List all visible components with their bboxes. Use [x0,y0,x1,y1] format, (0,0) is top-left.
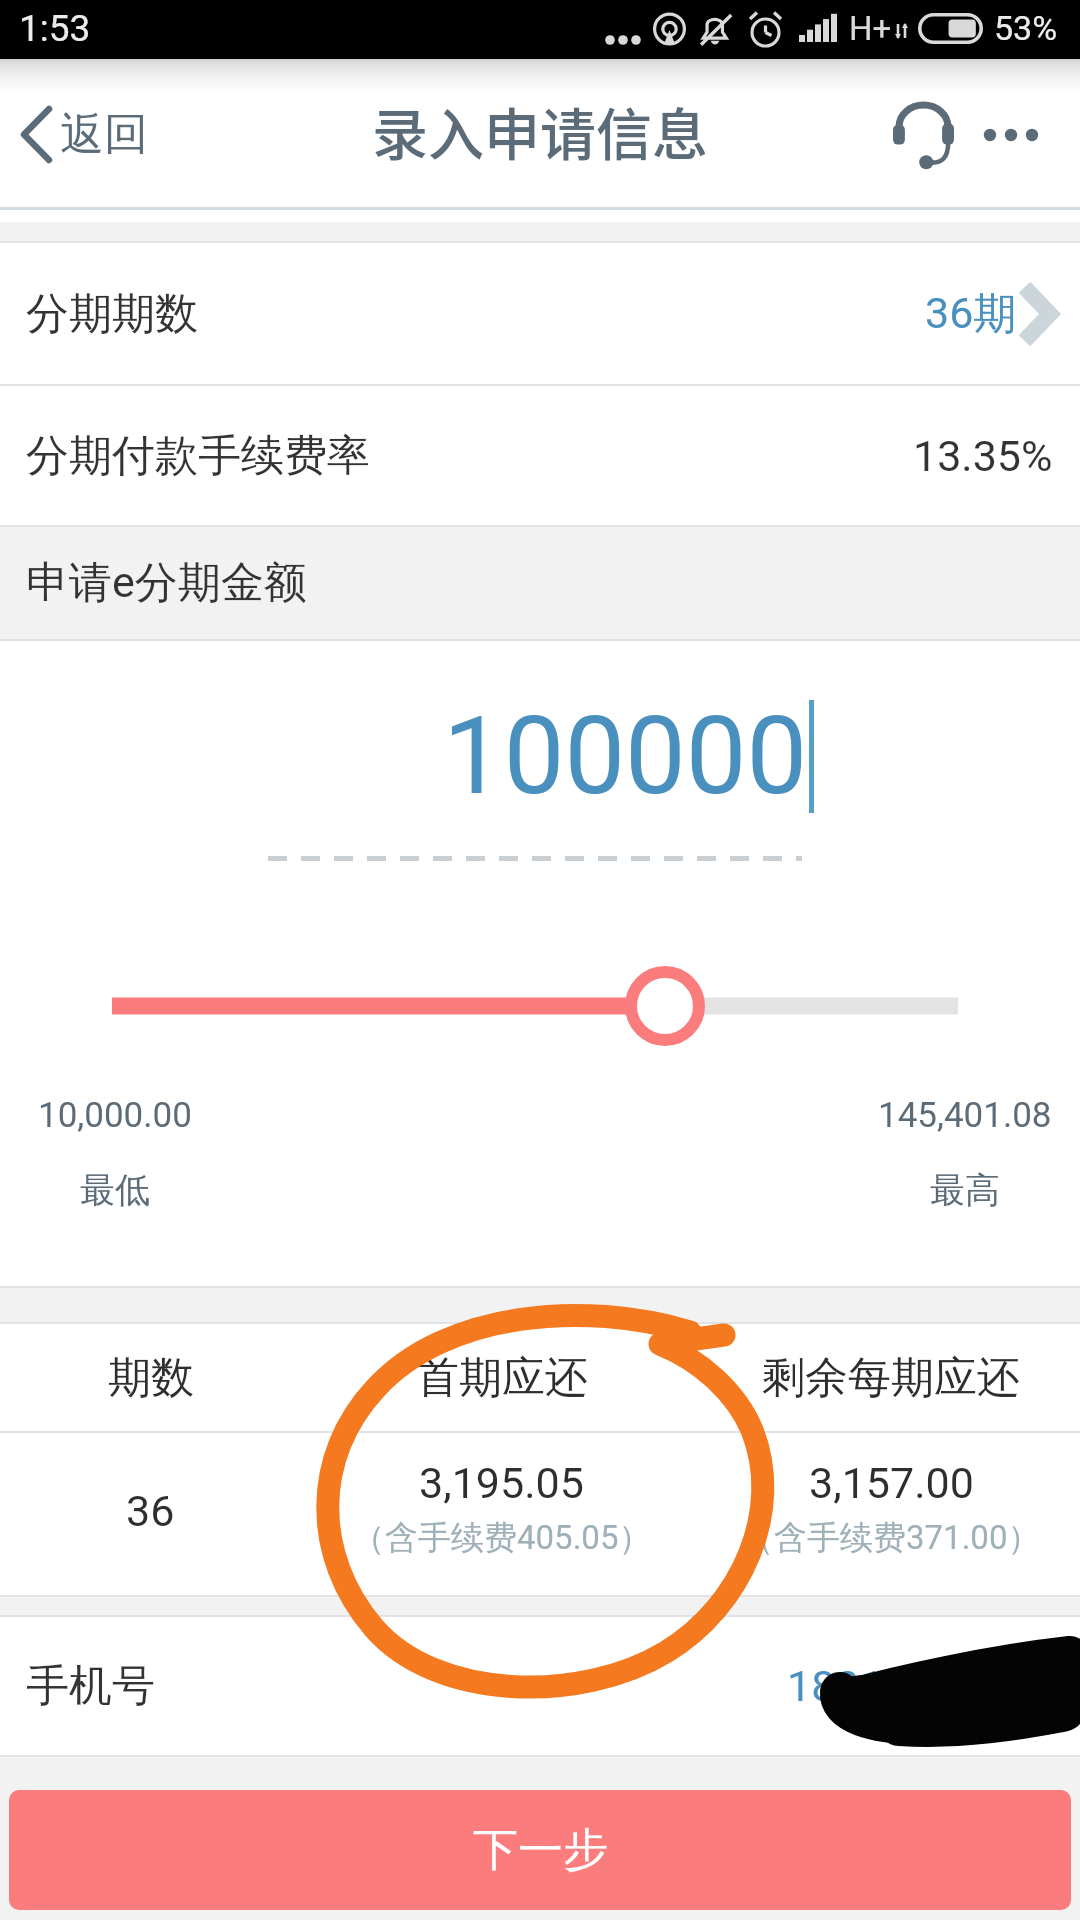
staticText: 36期 [925,287,1017,341]
staticText: 分期付款手续费率 [26,429,370,483]
staticText: 最低 [80,1168,150,1212]
staticText: 录入申请信息 [372,90,708,171]
staticText: 36 [126,1486,175,1536]
staticText: 分期期数 [26,287,198,341]
staticText: 100000 [443,693,808,820]
staticText: 10,000.00 [38,1095,192,1136]
staticText: 13.35% [913,431,1053,481]
staticText: 首期应还 [416,1351,588,1405]
button[interactable]: 下一步 [9,1790,1071,1910]
button[interactable]: 分期付款手续费率 [0,386,1080,525]
staticText: 145,401.08 [878,1095,1052,1136]
staticText: 手机号 [26,1659,155,1713]
staticText: 返回 [60,107,148,162]
staticText: 18012345678 [787,1661,1053,1711]
button[interactable]: 分期期数 [0,243,1080,384]
staticText: 剩余每期应还 [762,1351,1020,1405]
staticText: 期数 [108,1351,194,1405]
staticText: 申请e分期金额 [26,556,307,610]
button[interactable]: 手机号 [0,1617,1080,1755]
staticText: 1:53 [19,7,91,50]
staticText: 下一步 [473,1822,608,1879]
staticText: （含手续费405.05） [352,1517,652,1559]
staticText: 53% [994,8,1058,48]
button[interactable]: Instalment amount input [0,693,1080,862]
button[interactable]: More options [965,89,1057,181]
staticText: H+ [849,9,892,48]
button[interactable]: 返回 [0,96,168,173]
staticText: 最高 [930,1168,1000,1212]
staticText: 3,157.00 [809,1458,974,1508]
staticText: （含手续费371.00） [741,1517,1041,1559]
button[interactable]: Amount slider [0,961,1080,1051]
button[interactable]: Customer service [877,89,969,181]
staticText: 3,195.05 [419,1458,584,1508]
